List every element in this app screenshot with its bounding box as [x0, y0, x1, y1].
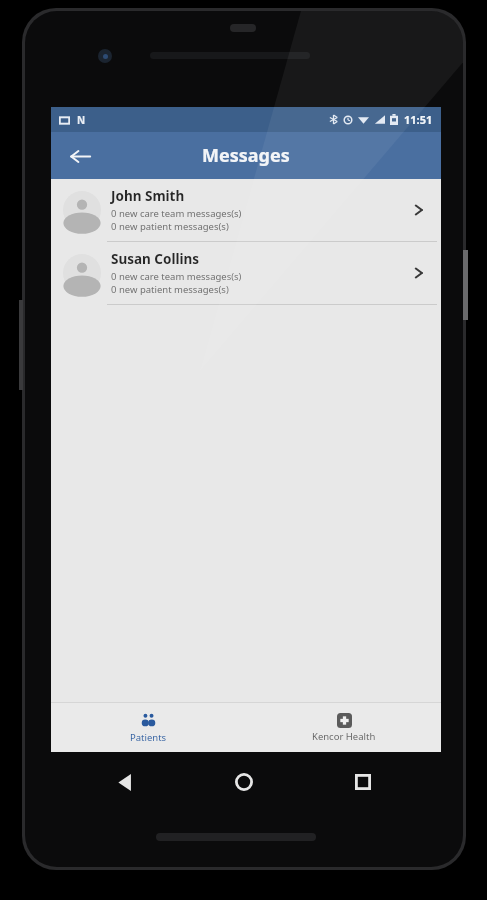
staticText: N [77, 113, 86, 127]
button[interactable]: Patients [51, 703, 246, 752]
staticText: 0 new care team messages(s) [111, 270, 242, 283]
button[interactable]: Back [106, 763, 144, 801]
button[interactable]: Home [225, 763, 263, 801]
button[interactable]: Susan Collins [51, 242, 441, 305]
staticText: 0 new patient messages(s) [111, 220, 229, 233]
staticText: 11:51 [404, 112, 433, 127]
staticText: Kencor Health [312, 730, 376, 743]
staticText: 0 new patient messages(s) [111, 283, 229, 296]
button[interactable]: Recent apps [344, 763, 382, 801]
staticText: 0 new care team messages(s) [111, 207, 242, 220]
button[interactable]: John Smith [51, 179, 441, 242]
staticText: Susan Collins [111, 250, 200, 268]
button[interactable]: Navigate up [60, 136, 100, 176]
button[interactable]: Kencor Health [246, 703, 441, 752]
staticText: Messages [202, 143, 290, 168]
staticText: Patients [130, 731, 167, 744]
staticText: John Smith [111, 187, 185, 205]
